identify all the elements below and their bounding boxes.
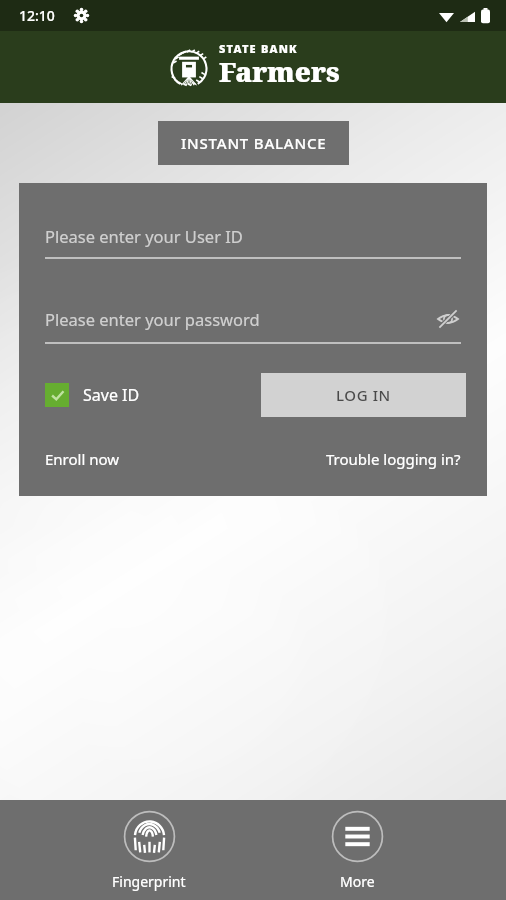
staticText: Enroll now: [45, 449, 120, 469]
button[interactable]: Fingerprint: [89, 810, 209, 891]
staticText: More: [340, 872, 375, 891]
button[interactable]: LOG IN: [261, 373, 466, 417]
staticText: Please enter your User ID: [45, 225, 243, 247]
staticText: Save ID: [83, 384, 140, 406]
staticText: Fingerprint: [112, 872, 186, 891]
staticText: LOG IN: [336, 385, 391, 405]
staticText: Farmers: [219, 53, 340, 90]
other: Show password: [435, 306, 461, 332]
staticText: 12:10: [19, 6, 55, 25]
staticText: INSTANT BALANCE: [181, 133, 327, 153]
button[interactable]: Enroll now: [45, 449, 120, 469]
button[interactable]: Please enter your User ID: [45, 225, 461, 259]
staticText: STATE BANK: [219, 41, 298, 56]
button[interactable]: Trouble logging in?: [326, 449, 461, 469]
staticText: Please enter your password: [45, 308, 260, 330]
button[interactable]: More: [297, 810, 417, 891]
button[interactable]: Please enter your password: [45, 306, 461, 344]
button[interactable]: INSTANT BALANCE: [158, 121, 349, 165]
staticText: Trouble logging in?: [326, 449, 461, 469]
button[interactable]: Save ID: [45, 383, 140, 407]
